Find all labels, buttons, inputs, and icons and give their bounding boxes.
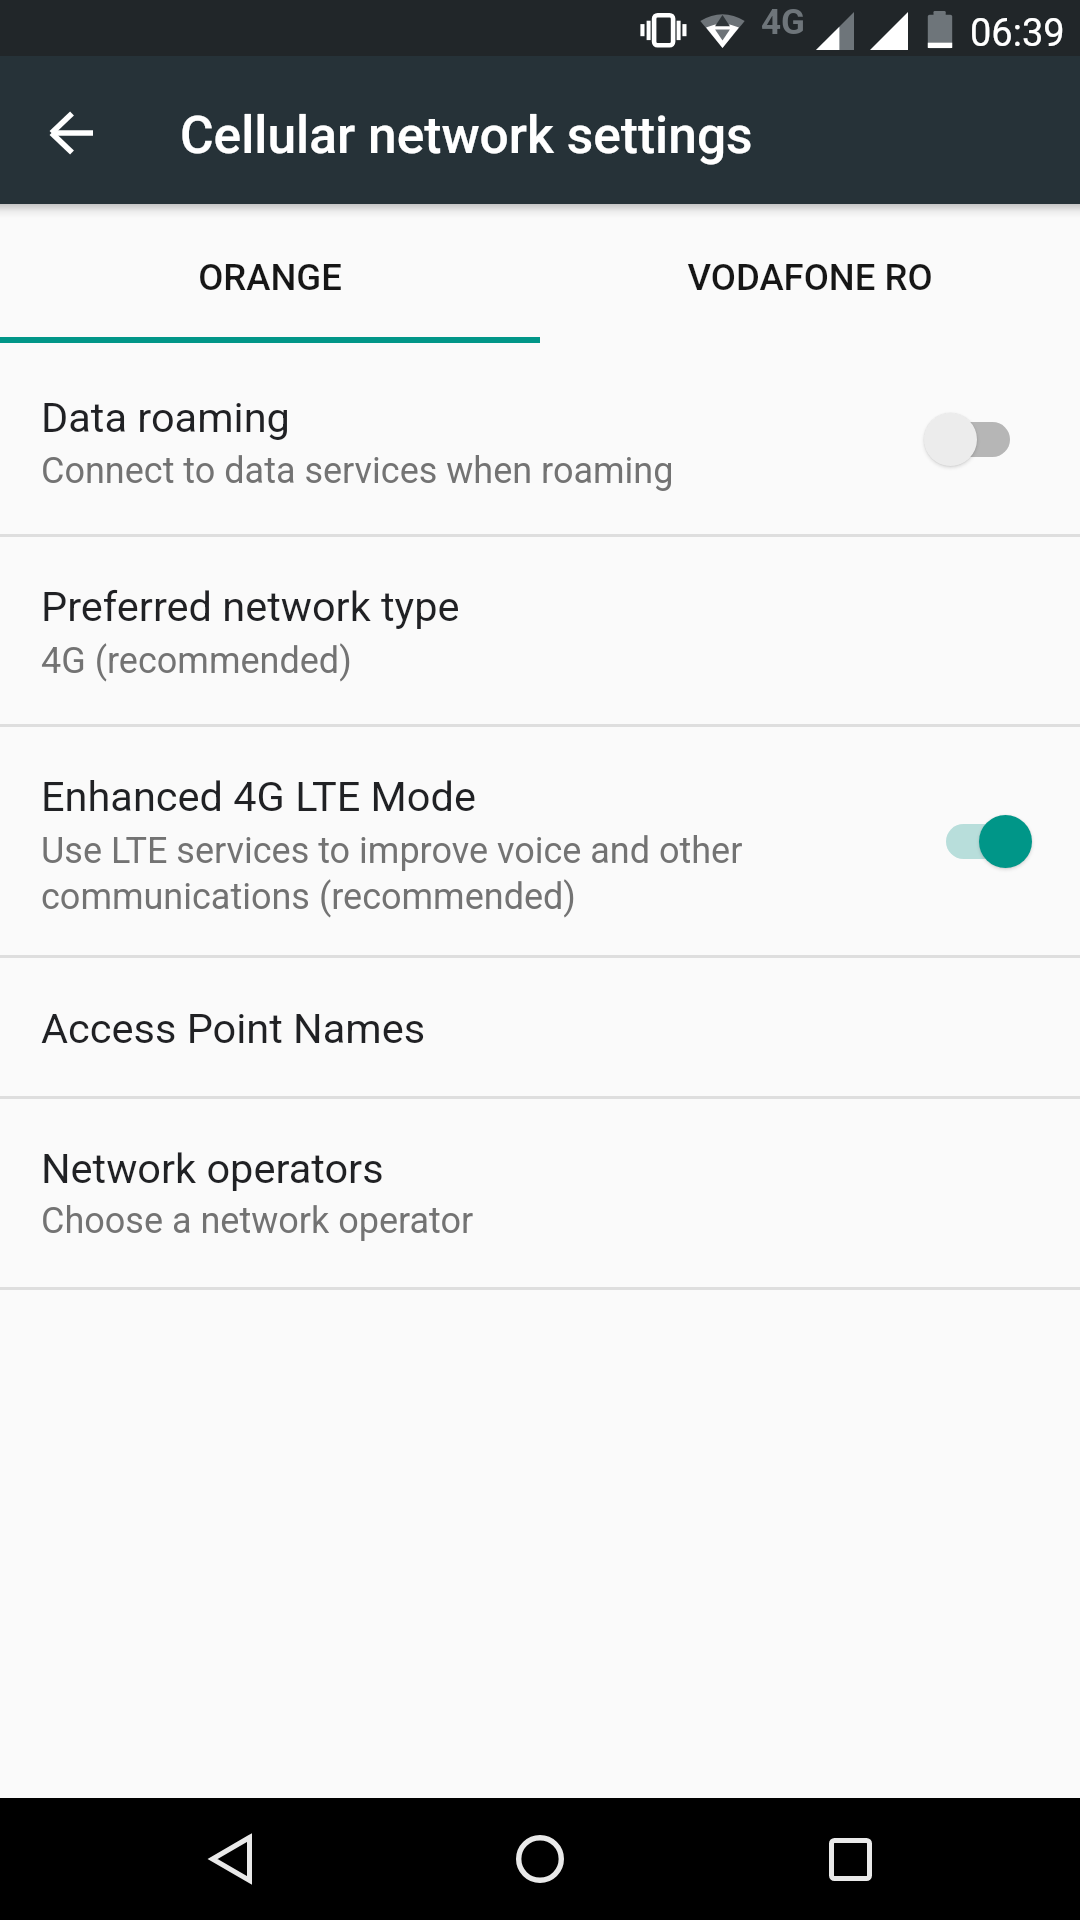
button[interactable]: Back	[171, 1799, 291, 1919]
button[interactable]: VODAFONE RO	[540, 204, 1080, 343]
button[interactable]: Toggle Enhanced 4G LTE Mode	[915, 793, 1043, 889]
staticText: Choose a network operator	[41, 1200, 474, 1242]
staticText: Network operators	[41, 1144, 384, 1193]
button[interactable]: ORANGE	[0, 204, 540, 343]
staticText: VODAFONE RO	[687, 256, 933, 299]
staticText: Use LTE services to improve voice and ot…	[41, 830, 743, 918]
button[interactable]: Toggle Data roaming	[915, 391, 1043, 487]
staticText: ORANGE	[198, 256, 342, 299]
staticText: Preferred network type	[41, 582, 460, 631]
staticText: 4G (recommended)	[41, 640, 352, 682]
button[interactable]: Navigate up	[28, 88, 118, 178]
button[interactable]: Network operators	[0, 1097, 1080, 1288]
button[interactable]: Access Point Names	[0, 956, 1080, 1097]
button[interactable]: Recent apps	[790, 1799, 910, 1919]
staticText: Data roaming	[41, 393, 290, 442]
staticText: 06:39	[970, 11, 1065, 56]
button[interactable]: Data roaming	[0, 343, 1080, 535]
button[interactable]: Preferred network type	[0, 535, 1080, 725]
staticText: Access Point Names	[41, 1004, 426, 1053]
staticText: Cellular network settings	[180, 105, 753, 165]
staticText: Enhanced 4G LTE Mode	[41, 772, 476, 821]
button[interactable]: Home	[480, 1799, 600, 1919]
button[interactable]: Enhanced 4G LTE Mode	[0, 725, 1080, 956]
staticText: Connect to data services when roaming	[41, 450, 674, 492]
staticText: 4G	[761, 2, 805, 43]
